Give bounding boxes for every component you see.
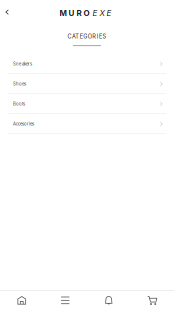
button[interactable]: Boots: [0, 94, 174, 114]
staticText: Shoes: [13, 81, 26, 86]
button[interactable]: Accesories: [0, 114, 174, 134]
button[interactable]: Back: [5, 9, 18, 21]
staticText: Accesories: [13, 121, 34, 126]
staticText: CATEGORIES: [67, 33, 107, 40]
button[interactable]: Cart: [130, 291, 174, 310]
button[interactable]: Home: [0, 291, 43, 310]
button[interactable]: Notifications: [87, 291, 130, 310]
staticText: EXE: [92, 8, 111, 18]
staticText: Boots: [13, 101, 25, 106]
button[interactable]: Menu: [43, 291, 87, 310]
staticText: Sneakers: [13, 61, 32, 66]
button[interactable]: Sneakers: [0, 54, 174, 74]
staticText: MURO: [59, 8, 89, 18]
button[interactable]: Shoes: [0, 74, 174, 94]
